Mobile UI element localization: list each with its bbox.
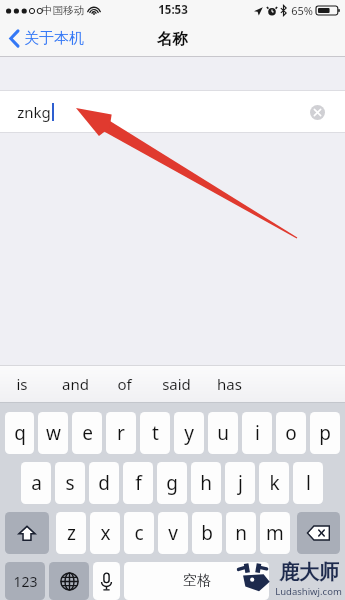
staticText: 123	[13, 572, 38, 591]
button[interactable]: Clear text	[306, 101, 328, 123]
button[interactable]: and	[60, 369, 91, 399]
button[interactable]: o	[276, 412, 306, 454]
button[interactable]: f	[123, 462, 153, 504]
button[interactable]: Backspace	[297, 512, 340, 554]
staticText: y	[184, 420, 194, 446]
staticText: is	[16, 374, 28, 394]
staticText: has	[217, 374, 242, 394]
button[interactable]: a	[21, 462, 51, 504]
staticText: j	[238, 470, 243, 496]
staticText: x	[100, 520, 111, 546]
button[interactable]: is	[14, 369, 30, 399]
staticText: 中国移动	[42, 4, 84, 17]
button[interactable]: w	[38, 412, 68, 454]
staticText: znkg	[17, 102, 51, 122]
button[interactable]: v	[158, 512, 188, 554]
button[interactable]: n	[226, 512, 256, 554]
button[interactable]: q	[5, 412, 34, 454]
staticText: e	[82, 420, 93, 446]
staticText: v	[168, 520, 178, 546]
button[interactable]: y	[174, 412, 204, 454]
staticText: q	[14, 420, 26, 446]
staticText: o	[285, 420, 297, 446]
button[interactable]: j	[225, 462, 255, 504]
staticText: Ludashiwj.com	[275, 585, 342, 598]
button[interactable]: d	[89, 462, 119, 504]
staticText: w	[46, 420, 61, 446]
staticText: 关于本机	[24, 29, 84, 48]
button[interactable]: e	[72, 412, 102, 454]
staticText: p	[319, 420, 331, 446]
staticText: d	[98, 470, 110, 496]
staticText: n	[235, 520, 247, 546]
staticText: m	[266, 520, 284, 546]
button[interactable]: 空格	[124, 562, 269, 600]
staticText: 15:53	[158, 2, 188, 18]
button[interactable]: s	[55, 462, 85, 504]
button[interactable]: Switch keyboard language	[49, 562, 89, 600]
staticText: f	[135, 470, 142, 496]
button[interactable]: of	[115, 369, 134, 399]
button[interactable]: c	[124, 512, 154, 554]
button[interactable]: z	[56, 512, 86, 554]
button[interactable]: k	[259, 462, 289, 504]
staticText: said	[162, 374, 191, 394]
staticText: u	[217, 420, 229, 446]
staticText: l	[306, 470, 311, 496]
staticText: b	[201, 520, 213, 546]
staticText: h	[200, 470, 212, 496]
button[interactable]: r	[106, 412, 136, 454]
staticText: and	[62, 374, 89, 394]
staticText: 鹿大师	[279, 560, 339, 585]
button[interactable]: has	[215, 369, 244, 399]
button[interactable]: 关于本机	[7, 25, 86, 52]
staticText: 空格	[183, 572, 211, 590]
button[interactable]: 123	[5, 562, 45, 600]
button[interactable]: p	[310, 412, 340, 454]
button[interactable]: Dictation	[93, 562, 120, 600]
button[interactable]: x	[90, 512, 120, 554]
staticText: c	[134, 520, 144, 546]
staticText: k	[269, 470, 280, 496]
staticText: z	[67, 520, 76, 546]
button[interactable]: l	[293, 462, 323, 504]
button[interactable]: h	[191, 462, 221, 504]
staticText: i	[255, 420, 260, 446]
staticText: r	[117, 420, 125, 446]
staticText: 名称	[157, 29, 188, 49]
button[interactable]: t	[140, 412, 170, 454]
button[interactable]: said	[160, 369, 193, 399]
button[interactable]: Shift	[5, 512, 49, 554]
staticText: of	[117, 374, 132, 394]
button[interactable]: znkg	[0, 90, 345, 133]
staticText: 65%	[291, 3, 313, 18]
staticText: a	[31, 470, 42, 496]
button[interactable]: i	[242, 412, 272, 454]
button[interactable]: b	[192, 512, 222, 554]
staticText: g	[166, 470, 178, 496]
button[interactable]: u	[208, 412, 238, 454]
button[interactable]: m	[260, 512, 290, 554]
staticText: s	[65, 470, 75, 496]
staticText: t	[152, 420, 159, 446]
button[interactable]: g	[157, 462, 187, 504]
